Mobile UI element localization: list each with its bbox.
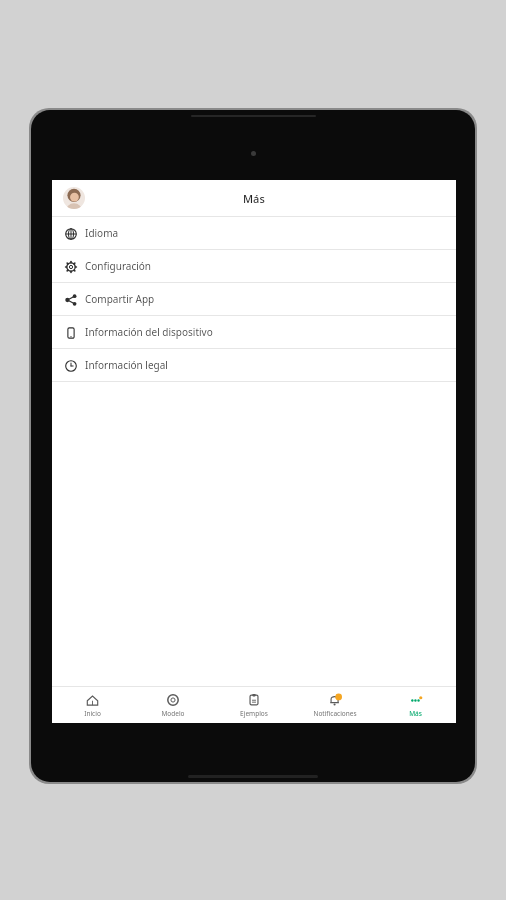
- button[interactable]: Compartir App: [52, 283, 456, 315]
- staticText: Más: [409, 709, 422, 718]
- staticText: Notificaciones: [313, 709, 357, 718]
- staticText: Más: [243, 191, 265, 206]
- button[interactable]: Notificaciones: [294, 687, 375, 723]
- button[interactable]: Información legal: [52, 349, 456, 381]
- staticText: Información del dispositivo: [85, 325, 213, 339]
- staticText: Compartir App: [85, 292, 155, 306]
- staticText: Modelo: [161, 709, 185, 718]
- staticText: Configuración: [85, 259, 152, 273]
- button[interactable]: Idioma: [52, 217, 456, 249]
- staticText: Inicio: [84, 709, 101, 718]
- staticText: Información legal: [85, 358, 168, 372]
- button[interactable]: Información del dispositivo: [52, 316, 456, 348]
- staticText: Ejemplos: [240, 709, 268, 718]
- button[interactable]: Modelo: [132, 687, 213, 723]
- button[interactable]: Inicio: [52, 687, 132, 723]
- button[interactable]: Más: [375, 687, 456, 723]
- button[interactable]: Ejemplos: [213, 687, 294, 723]
- staticText: Idioma: [85, 226, 119, 240]
- button[interactable]: Perfil: [63, 187, 85, 209]
- button[interactable]: Configuración: [52, 250, 456, 282]
